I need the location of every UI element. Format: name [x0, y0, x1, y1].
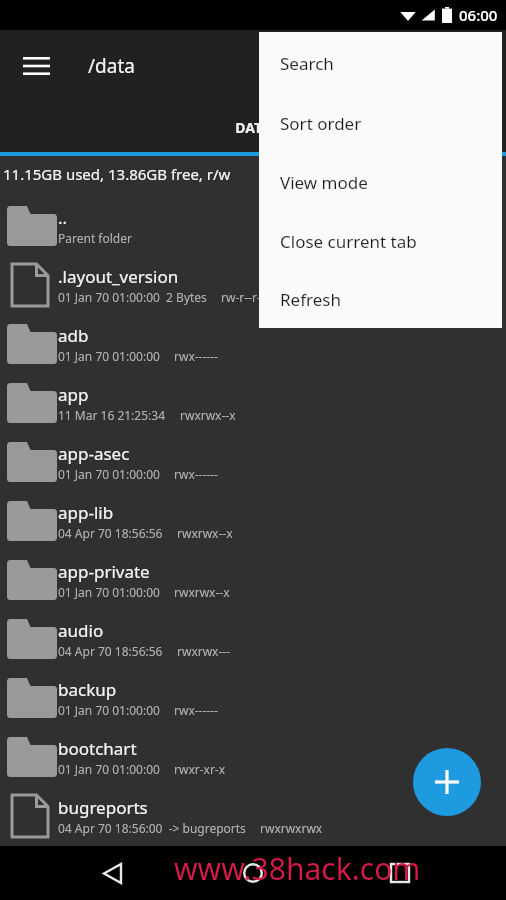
staticText: rwxrwx--- [177, 643, 231, 659]
staticText: 04 Apr 70 18:56:56 [58, 643, 163, 659]
staticText: app-lib [58, 501, 114, 524]
button[interactable]: Search [259, 32, 502, 94]
staticText: 01 Jan 70 01:00:00 [58, 702, 160, 718]
button[interactable]: bugreports [0, 786, 506, 845]
staticText: app-asec [58, 442, 130, 465]
button[interactable]: Recent apps [372, 846, 428, 900]
staticText: 01 Jan 70 01:00:00 [58, 466, 160, 482]
staticText: Refresh [280, 288, 341, 311]
staticText: www.38hack.com [174, 848, 421, 889]
staticText: .layout_version [58, 265, 179, 288]
button[interactable]: app-lib [0, 491, 506, 550]
staticText: backup [58, 678, 117, 701]
staticText: View mode [280, 171, 368, 194]
staticText: audio [58, 619, 104, 642]
staticText: 01 Jan 70 01:00:00 [58, 761, 160, 777]
button[interactable]: Refresh [259, 271, 502, 328]
staticText: app-private [58, 560, 150, 583]
staticText: Close current tab [280, 230, 417, 253]
button[interactable]: View mode [259, 153, 502, 212]
staticText: rwxrwx--x [180, 407, 236, 423]
button[interactable]: Add [413, 748, 481, 816]
staticText: Parent folder [58, 230, 132, 246]
staticText: app [58, 383, 89, 406]
staticText: 01 Jan 70 01:00:00 2 Bytes [58, 289, 207, 305]
staticText: /data [88, 53, 135, 79]
staticText: rwxrwxrwx [260, 820, 323, 836]
button[interactable]: audio [0, 609, 506, 668]
staticText: bugreports [58, 796, 148, 819]
button[interactable]: app-asec [0, 432, 506, 491]
staticText: rwx------ [174, 466, 218, 482]
button[interactable]: Open navigation drawer [10, 40, 62, 92]
staticText: Search [280, 52, 334, 75]
button[interactable]: Home [225, 846, 281, 900]
staticText: rwx------ [174, 702, 218, 718]
staticText: 01 Jan 70 01:00:00 [58, 584, 160, 600]
staticText: rwx------ [174, 348, 218, 364]
staticText: rwxrwx--x [174, 584, 230, 600]
button[interactable]: backup [0, 668, 506, 727]
button[interactable]: Back [84, 846, 140, 900]
button[interactable]: DATA [0, 102, 506, 152]
button[interactable]: adb [0, 314, 506, 373]
staticText: DATA [235, 118, 271, 137]
staticText: 11.15GB used, 13.86GB free, r/w [3, 164, 231, 184]
staticText: 04 Apr 70 18:56:56 [58, 525, 163, 541]
staticText: 11 Mar 16 21:25:34 [58, 407, 166, 423]
button[interactable]: app-private [0, 550, 506, 609]
staticText: 06:00 [459, 5, 498, 25]
button[interactable]: Close current tab [259, 212, 502, 271]
button[interactable]: Sort order [259, 94, 502, 153]
staticText: adb [58, 324, 89, 347]
staticText: rw-r--r-- [221, 289, 265, 305]
button[interactable]: .. [0, 196, 506, 255]
staticText: 04 Apr 70 18:56:00 -> bugreports [58, 820, 246, 836]
button[interactable]: .layout_version [0, 255, 506, 314]
staticText: bootchart [58, 737, 137, 760]
button[interactable]: app [0, 373, 506, 432]
staticText: rwxrwx--x [177, 525, 233, 541]
staticText: Sort order [280, 112, 362, 135]
staticText: .. [58, 206, 68, 229]
button[interactable]: bootchart [0, 727, 506, 786]
staticText: 01 Jan 70 01:00:00 [58, 348, 160, 364]
staticText: rwxr-xr-x [174, 761, 226, 777]
